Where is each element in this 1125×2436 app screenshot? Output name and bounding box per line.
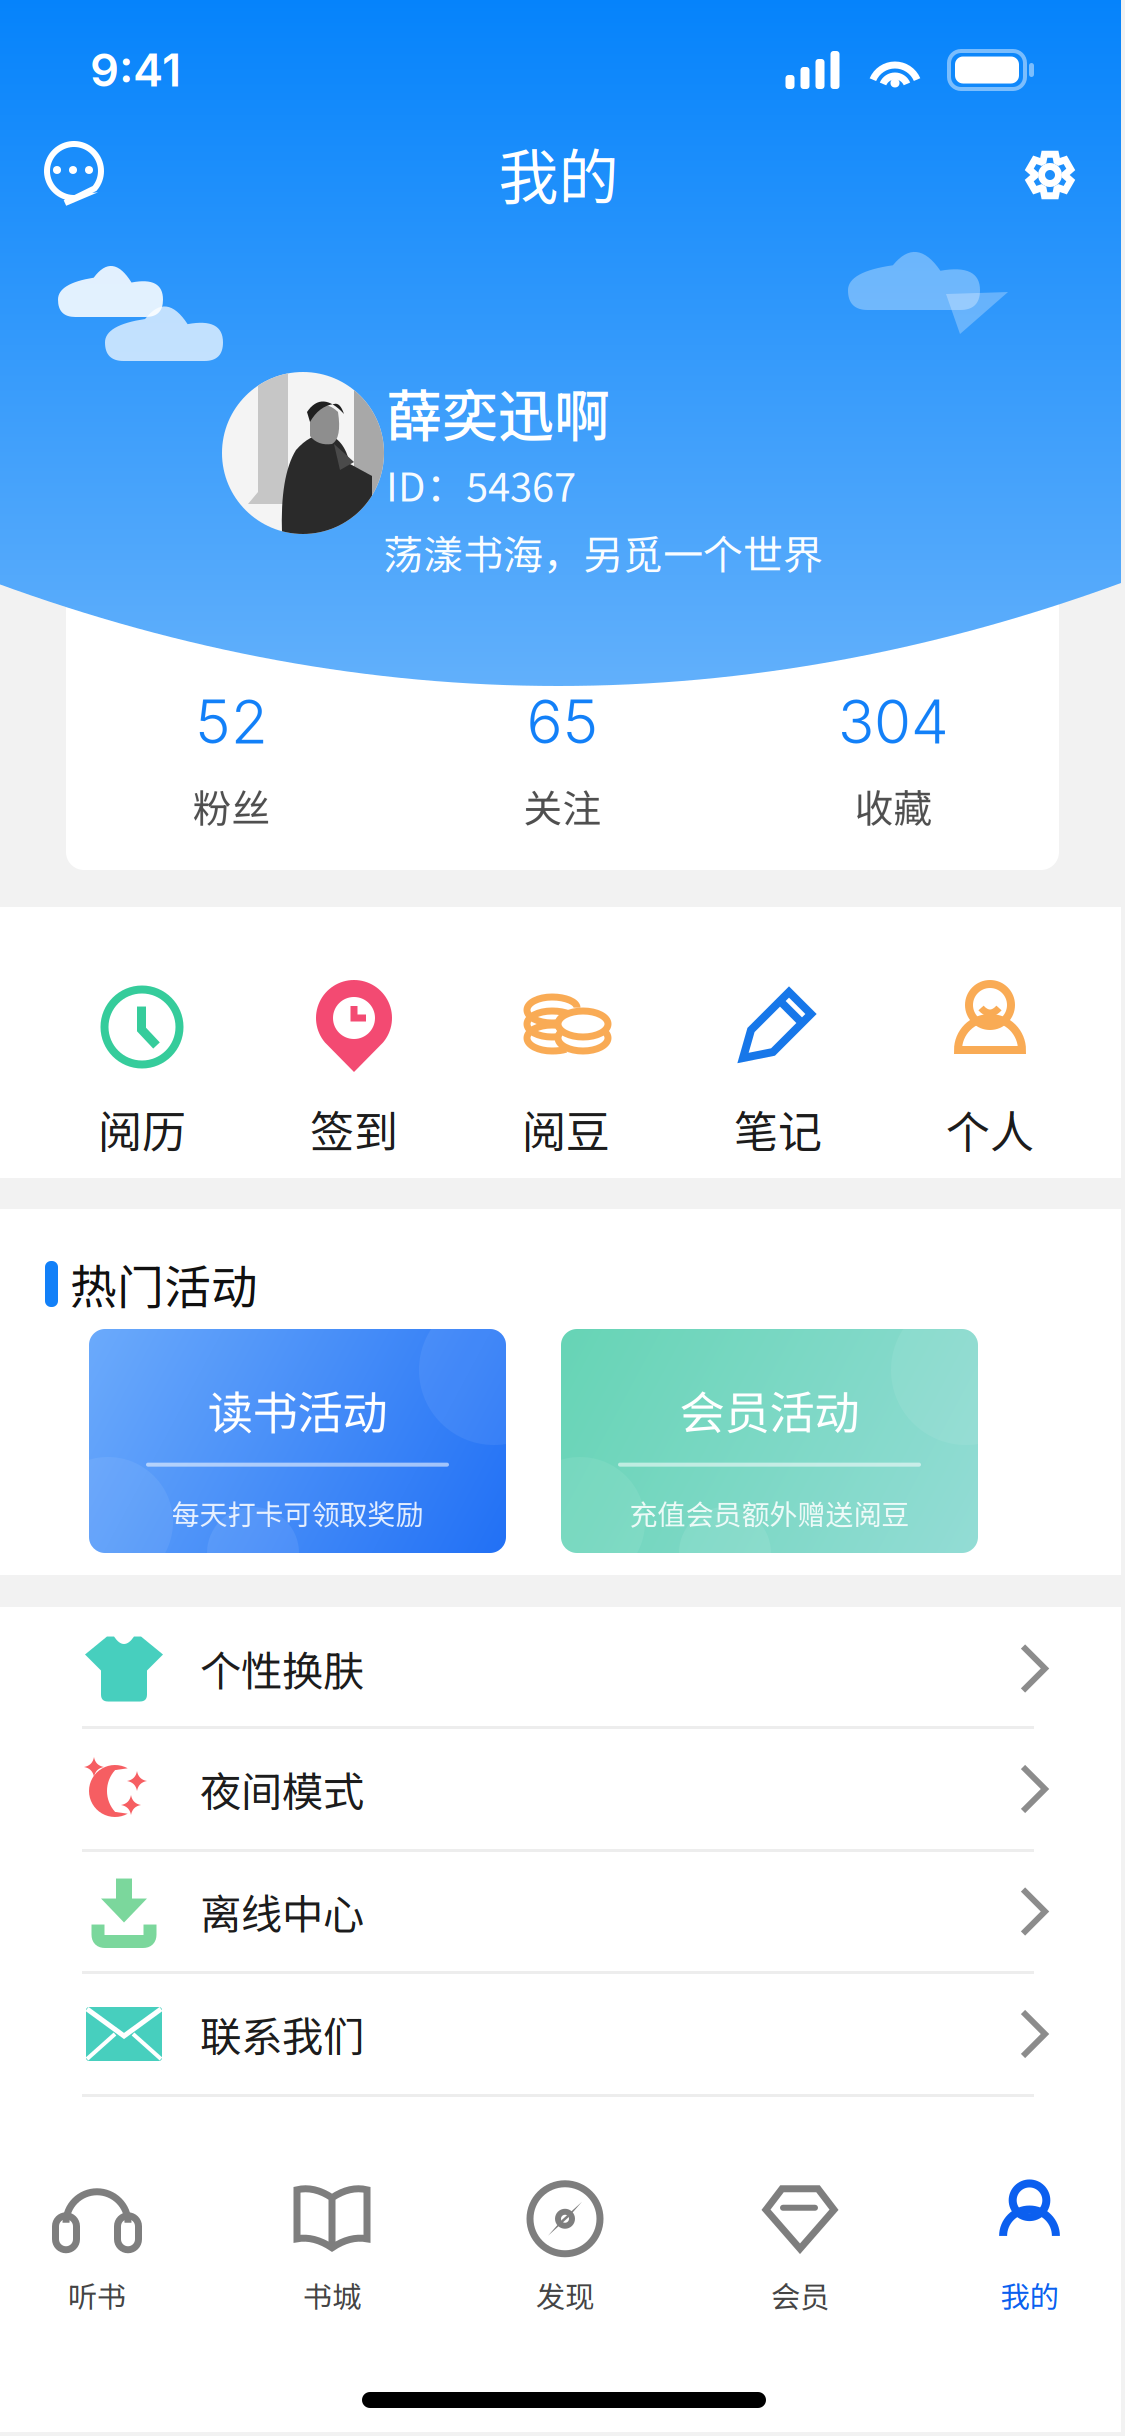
- staticText: 会员活动: [679, 1377, 859, 1443]
- button[interactable]: 65: [397, 583, 728, 870]
- staticText: 书城: [303, 2274, 361, 2316]
- staticText: 联系我们: [200, 2004, 364, 2064]
- staticText: 个性换肤: [200, 1639, 364, 1698]
- staticText: 笔记: [734, 1097, 822, 1161]
- staticText: 充值会员额外赠送阅豆: [629, 1493, 909, 1533]
- button[interactable]: 52: [66, 583, 397, 870]
- staticText: 夜间模式: [200, 1759, 364, 1819]
- staticText: 阅历: [98, 1097, 186, 1161]
- staticText: 阅豆: [522, 1097, 610, 1161]
- button[interactable]: 我的: [934, 2188, 1124, 2318]
- button[interactable]: 签到: [248, 907, 460, 1178]
- staticText: 收藏: [854, 778, 932, 834]
- button[interactable]: 离线中心: [0, 1852, 1121, 1974]
- staticText: 65: [526, 685, 598, 758]
- button[interactable]: 会员活动: [561, 1329, 978, 1553]
- staticText: 薛奕迅啊: [386, 371, 610, 453]
- staticText: 读书活动: [207, 1377, 387, 1443]
- button[interactable]: 听书: [2, 2188, 192, 2318]
- button[interactable]: 发现: [470, 2188, 660, 2318]
- staticText: ID：54367: [386, 455, 576, 513]
- button[interactable]: Messages: [42, 140, 106, 206]
- staticText: 304: [838, 685, 949, 758]
- button[interactable]: 阅历: [36, 907, 248, 1178]
- staticText: 个人: [946, 1097, 1034, 1161]
- staticText: 荡漾书海，另觅一个世界: [383, 523, 823, 581]
- button[interactable]: 笔记: [672, 907, 884, 1178]
- staticText: 关注: [523, 778, 601, 834]
- staticText: 52: [195, 685, 268, 758]
- button[interactable]: 304: [728, 583, 1059, 870]
- button[interactable]: 书城: [237, 2188, 427, 2318]
- button[interactable]: 读书活动: [89, 1329, 506, 1553]
- staticText: 签到: [310, 1097, 398, 1161]
- staticText: 会员: [771, 2274, 829, 2316]
- staticText: 听书: [68, 2274, 126, 2316]
- staticText: 9:41: [90, 43, 181, 97]
- staticText: 每天打卡可领取奖励: [171, 1493, 423, 1533]
- button[interactable]: 个性换肤: [0, 1611, 1121, 1729]
- staticText: 离线中心: [200, 1882, 364, 1941]
- button[interactable]: 夜间模式: [0, 1729, 1121, 1852]
- button[interactable]: 阅豆: [460, 907, 672, 1178]
- staticText: 我的: [1000, 2274, 1058, 2316]
- button[interactable]: 会员: [705, 2188, 895, 2318]
- button[interactable]: 个人: [884, 907, 1096, 1178]
- staticText: 粉丝: [192, 778, 270, 834]
- staticText: 我的: [498, 130, 618, 216]
- staticText: 发现: [536, 2274, 594, 2316]
- staticText: 热门活动: [70, 1250, 258, 1318]
- button[interactable]: Settings: [1024, 149, 1076, 201]
- button[interactable]: 联系我们: [0, 1974, 1121, 2097]
